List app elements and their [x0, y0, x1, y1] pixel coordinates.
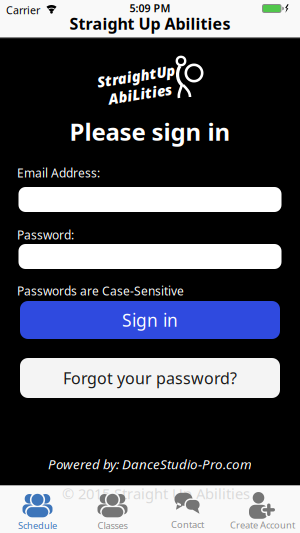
staticText: Forgot your password? — [63, 367, 237, 389]
button[interactable]: Sign in — [20, 301, 280, 339]
staticText: StraightUp — [96, 66, 175, 86]
staticText: Create Account — [230, 519, 295, 531]
button[interactable]: Schedule — [0, 489, 75, 533]
button[interactable]: Contact — [150, 489, 225, 533]
staticText: Classes — [97, 519, 127, 532]
staticText: Passwords are Case-Sensitive — [17, 283, 184, 299]
staticText: © 2015 Straight Up Abilities — [62, 484, 250, 503]
button[interactable]: Create Account — [225, 489, 300, 533]
staticText: Password: — [17, 227, 74, 243]
staticText: Straight Up Abilities — [69, 13, 230, 34]
button[interactable]: Forgot your password? — [20, 358, 280, 398]
staticText: 5:09 PM — [129, 1, 170, 15]
staticText: Please sign in — [69, 116, 230, 147]
staticText: Contact — [171, 518, 204, 531]
button[interactable]: Classes — [75, 489, 150, 533]
staticText: AbiLities — [108, 84, 172, 104]
button[interactable] — [18, 187, 281, 212]
button[interactable]: Powered by: DanceStudio-Pro.com — [48, 455, 252, 473]
staticText: Email Address: — [17, 165, 100, 181]
button[interactable] — [18, 244, 281, 269]
staticText: Schedule — [18, 519, 57, 532]
staticText: Sign in — [122, 308, 178, 331]
staticText: Carrier — [6, 3, 40, 17]
staticText: Powered by: DanceStudio-Pro.com — [48, 455, 252, 473]
